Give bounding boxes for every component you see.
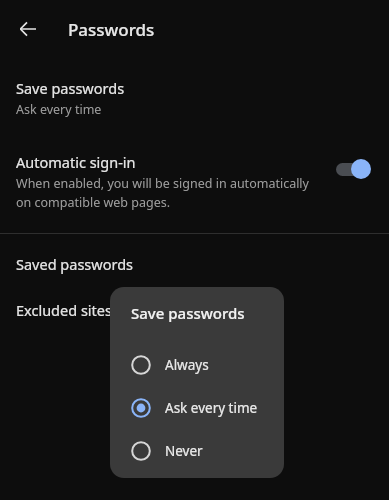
- staticText: Saved passwords: [16, 254, 133, 274]
- button[interactable]: Back: [14, 15, 42, 43]
- button[interactable]: Never: [110, 429, 284, 472]
- staticText: Ask every time: [165, 399, 258, 417]
- staticText: Save passwords: [16, 78, 125, 98]
- staticText: Always: [165, 356, 209, 374]
- button[interactable]: Ask every time: [110, 386, 284, 429]
- staticText: Passwords: [68, 18, 155, 41]
- staticText: Automatic sign-in: [16, 152, 136, 172]
- staticText: Never: [165, 442, 203, 460]
- staticText: When enabled, you will be signed in auto…: [16, 175, 309, 192]
- button[interactable]: Excluded sites: [0, 296, 389, 328]
- button[interactable]: Saved passwords: [0, 234, 389, 282]
- button[interactable]: Always: [110, 343, 284, 386]
- staticText: Save passwords: [131, 303, 245, 323]
- button[interactable]: Automatic sign-in: [0, 148, 389, 221]
- button[interactable]: Automatic sign-in toggle: [335, 158, 375, 180]
- staticText: Ask every time: [16, 101, 102, 118]
- staticText: on compatible web pages.: [16, 194, 171, 211]
- staticText: Excluded sites: [16, 300, 112, 320]
- button[interactable]: Save passwords: [0, 58, 389, 126]
